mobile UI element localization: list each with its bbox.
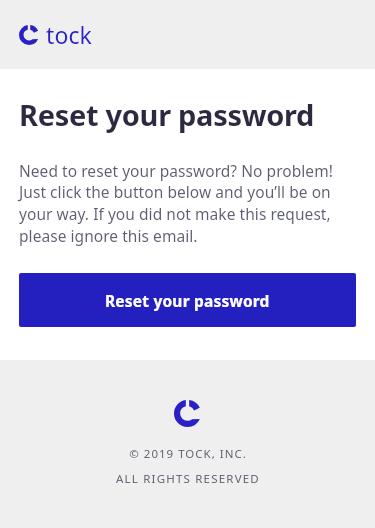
staticText: ALL RIGHTS RESERVED bbox=[116, 471, 260, 487]
button[interactable]: Tock logo bbox=[174, 400, 201, 427]
button[interactable]: tock bbox=[19, 19, 92, 50]
staticText: tock bbox=[46, 19, 92, 50]
staticText: Need to reset your password? No problem!… bbox=[19, 160, 356, 247]
button[interactable]: Reset your password bbox=[19, 273, 356, 327]
staticText: Reset your password bbox=[105, 290, 270, 311]
staticText: © 2019 TOCK, INC. bbox=[129, 446, 247, 462]
staticText: Reset your password bbox=[19, 95, 315, 134]
